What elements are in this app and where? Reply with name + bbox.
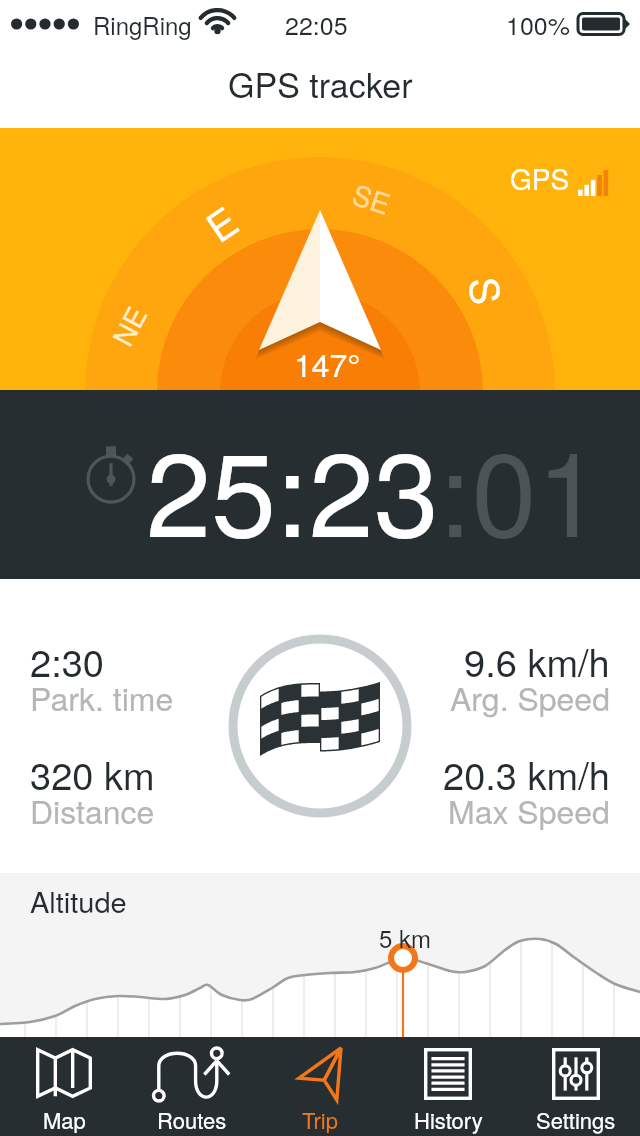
staticText: History <box>414 1104 483 1136</box>
staticText: 2:30 <box>30 633 104 687</box>
button[interactable]: Trip <box>256 1037 384 1136</box>
staticText: Altitude <box>30 880 127 922</box>
staticText: NE <box>101 299 155 352</box>
staticText: 5 km <box>379 920 432 954</box>
button[interactable]: Routes <box>128 1037 256 1136</box>
staticText: Park. time <box>30 674 174 720</box>
staticText: 100% <box>506 6 570 42</box>
staticText: Distance <box>30 787 155 833</box>
staticText: SE <box>348 173 396 223</box>
staticText: Settings <box>536 1104 616 1136</box>
button[interactable]: History <box>384 1037 512 1136</box>
staticText: 20.3 km/h <box>443 746 610 800</box>
staticText: 22:05 <box>285 6 348 42</box>
staticText: 25:23 <box>146 403 439 571</box>
staticText: E <box>194 191 248 253</box>
button[interactable]: Settings <box>512 1037 640 1136</box>
staticText: 9.6 km/h <box>464 633 610 687</box>
staticText: :01 <box>439 403 602 571</box>
staticText: Arg. Speed <box>450 674 610 720</box>
staticText: Max Speed <box>448 787 610 833</box>
staticText: 147° <box>294 340 361 386</box>
button[interactable]: Map <box>0 1037 128 1136</box>
staticText: Trip <box>302 1104 338 1136</box>
staticText: 320 km <box>30 746 155 800</box>
staticText: GPS <box>510 158 570 198</box>
staticText: Routes <box>157 1104 227 1136</box>
staticText: Map <box>43 1104 86 1136</box>
staticText: S <box>457 273 518 308</box>
staticText: GPS tracker <box>228 59 413 108</box>
staticText: RingRing <box>93 7 192 41</box>
